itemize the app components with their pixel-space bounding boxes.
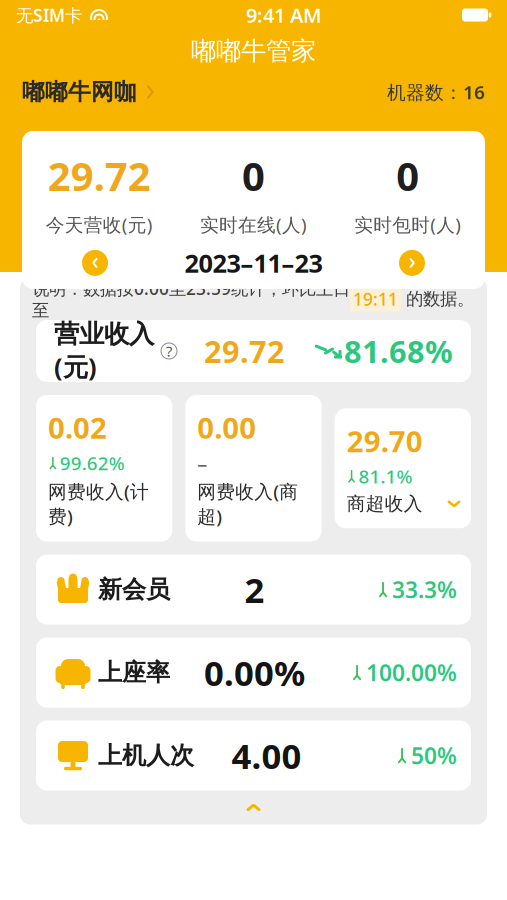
button[interactable]: 新会员 bbox=[36, 554, 471, 624]
staticText: 说明：数据按0:00至23:59统计，环比上日至 bbox=[32, 277, 350, 321]
staticText: 实时包时(人) bbox=[354, 212, 461, 237]
staticText: 4.00 bbox=[231, 732, 301, 778]
button[interactable]: 上座率 bbox=[36, 637, 471, 707]
staticText: 上座率 bbox=[98, 658, 170, 687]
staticText: 33.3% bbox=[392, 574, 457, 605]
staticText: 上机人次 bbox=[98, 741, 194, 770]
staticText: 9:41 AM bbox=[246, 2, 322, 28]
staticText: 81.68% bbox=[344, 331, 453, 371]
staticText: 的数据。 bbox=[401, 288, 474, 310]
staticText: 19:11 bbox=[353, 287, 398, 310]
button[interactable]: 嘟嘟牛网咖 bbox=[22, 78, 155, 106]
staticText: 0 bbox=[396, 149, 419, 202]
button[interactable]: 上机人次 bbox=[36, 720, 471, 790]
staticText: 29.72 bbox=[204, 331, 285, 371]
staticText: 新会员 bbox=[98, 575, 170, 604]
staticText: 实时在线(人) bbox=[200, 212, 307, 237]
button[interactable]: 29.70 bbox=[335, 408, 471, 528]
staticText: 嘟嘟牛管家 bbox=[191, 35, 316, 66]
button[interactable]: 前一天 bbox=[78, 246, 112, 280]
staticText: 今天营收(元) bbox=[46, 212, 153, 237]
staticText: 100.00% bbox=[366, 657, 457, 688]
staticText: 2023–11–23 bbox=[184, 246, 322, 280]
staticText: 商超收入 bbox=[347, 492, 423, 515]
staticText: 29.72 bbox=[48, 149, 151, 202]
staticText: – bbox=[197, 450, 207, 476]
staticText: 81.1% bbox=[358, 464, 412, 489]
button[interactable]: 收起 bbox=[20, 790, 487, 824]
staticText: 0.00 bbox=[197, 408, 256, 447]
staticText: 营业收入(元) bbox=[54, 319, 154, 383]
staticText: 2 bbox=[244, 566, 264, 612]
staticText: 网费收入(商超) bbox=[197, 479, 298, 529]
staticText: 网费收入(计费) bbox=[48, 479, 149, 529]
staticText: 0.02 bbox=[48, 408, 107, 447]
staticText: 机器数：16 bbox=[387, 80, 485, 104]
staticText: 99.62% bbox=[60, 451, 125, 475]
staticText: ? bbox=[166, 341, 172, 361]
staticText: 50% bbox=[411, 740, 457, 771]
button[interactable]: 后一天 bbox=[395, 246, 429, 280]
button[interactable]: 0.00 bbox=[185, 395, 322, 541]
staticText: 嘟嘟牛网咖 bbox=[22, 78, 137, 106]
staticText: 无SIM卡 bbox=[16, 3, 82, 26]
button[interactable]: 0.02 bbox=[36, 395, 172, 541]
staticText: 29.70 bbox=[347, 421, 423, 460]
staticText: 0.00% bbox=[204, 649, 305, 695]
staticText: 0 bbox=[242, 149, 265, 202]
